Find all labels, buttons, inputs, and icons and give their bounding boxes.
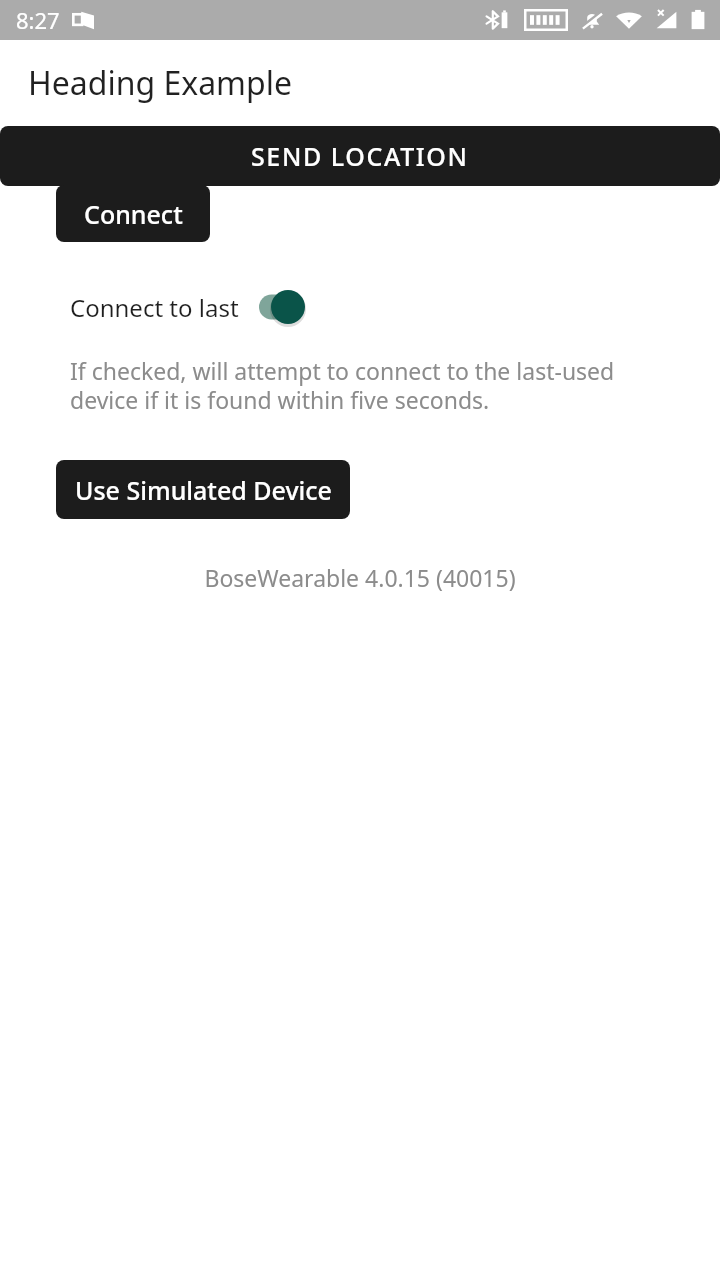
- staticText: SEND LOCATION: [251, 139, 469, 173]
- staticText: Heading Example: [28, 61, 293, 105]
- button[interactable]: SEND LOCATION: [0, 126, 720, 186]
- button[interactable]: Connect: [56, 185, 210, 242]
- button[interactable]: Connect to last: [70, 283, 315, 331]
- staticText: BoseWearable 4.0.15 (40015): [0, 562, 720, 593]
- staticText: 8:27: [16, 5, 60, 35]
- staticText: Use Simulated Device: [75, 473, 332, 507]
- button[interactable]: Use Simulated Device: [56, 460, 350, 519]
- button[interactable]: Connect to last toggle: [259, 287, 315, 327]
- staticText: Connect: [84, 197, 183, 231]
- staticText: Connect to last: [70, 291, 239, 324]
- staticText: If checked, will attempt to connect to t…: [70, 355, 615, 416]
